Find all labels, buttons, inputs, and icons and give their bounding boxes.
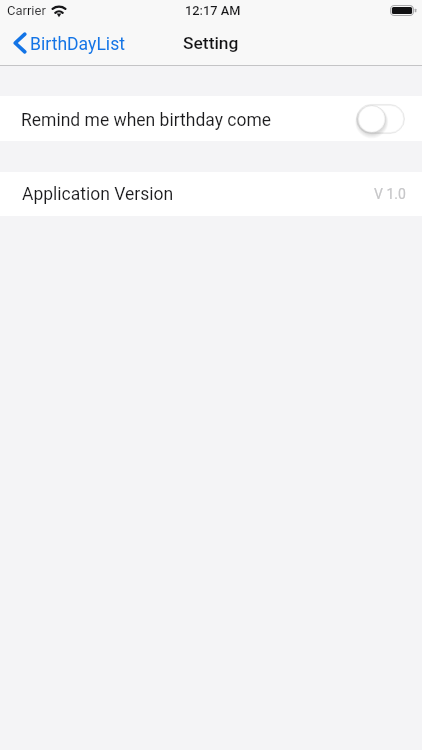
staticText: Carrier <box>7 3 46 18</box>
staticText: Application Version <box>22 184 174 205</box>
staticText: BirthDayList <box>30 34 125 55</box>
button[interactable]: Back to BirthDayList <box>0 29 133 57</box>
button[interactable]: Application Version <box>0 172 422 216</box>
staticText: V 1.0 <box>374 186 406 202</box>
staticText: Remind me when birthday come <box>21 110 272 131</box>
staticText: Setting <box>183 33 239 53</box>
button[interactable]: Remind me when birthday come <box>0 96 422 141</box>
button[interactable]: Reminder toggle, off <box>356 104 405 134</box>
staticText: 12:17 AM <box>185 3 241 18</box>
